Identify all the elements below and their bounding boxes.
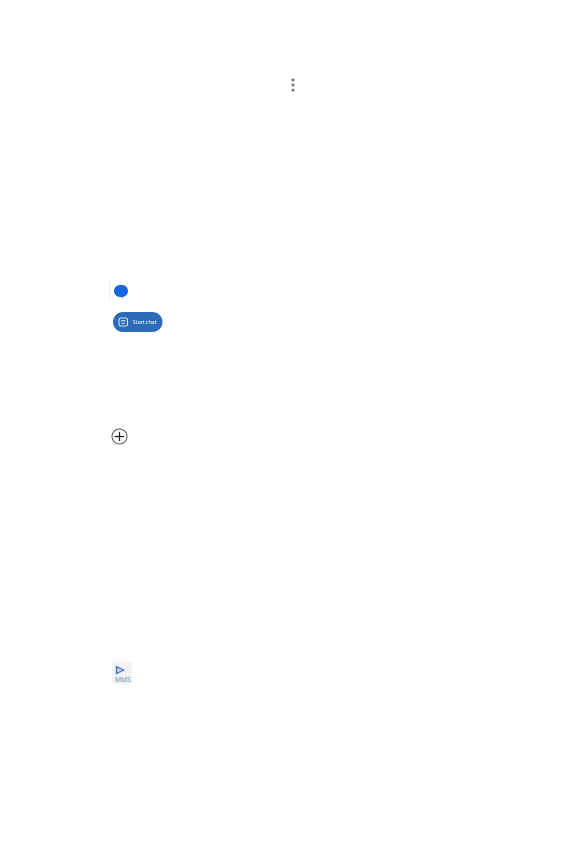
button[interactable]: Start chat [113, 312, 162, 332]
button[interactable]: More options [281, 73, 305, 97]
staticText: MMS [115, 675, 131, 684]
staticText: Start chat [132, 318, 156, 326]
button[interactable]: Add [111, 428, 128, 445]
